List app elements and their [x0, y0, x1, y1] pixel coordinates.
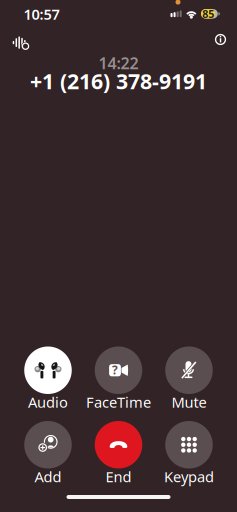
staticText: Keypad [164, 467, 214, 486]
staticText: Add [34, 467, 61, 486]
button[interactable]: End [83, 419, 154, 486]
button[interactable]: ? [83, 345, 154, 411]
button[interactable]: Call details [209, 28, 232, 51]
staticText: 10:57 [23, 4, 59, 24]
staticText: FaceTime [86, 392, 151, 412]
staticText: +1 (216) 378-9191 [30, 67, 207, 95]
staticText: ? [112, 362, 118, 378]
staticText: Audio [28, 392, 68, 412]
button[interactable]: Audio [13, 345, 83, 411]
staticText: Mute [171, 392, 206, 412]
staticText: End [105, 467, 131, 486]
staticText: 85 [202, 7, 214, 21]
button[interactable]: Audio output [7, 30, 32, 55]
button[interactable]: Mute [154, 345, 224, 411]
button[interactable]: Keypad [154, 419, 224, 486]
button[interactable]: Add [13, 419, 83, 486]
staticText: 14:22 [98, 52, 138, 74]
